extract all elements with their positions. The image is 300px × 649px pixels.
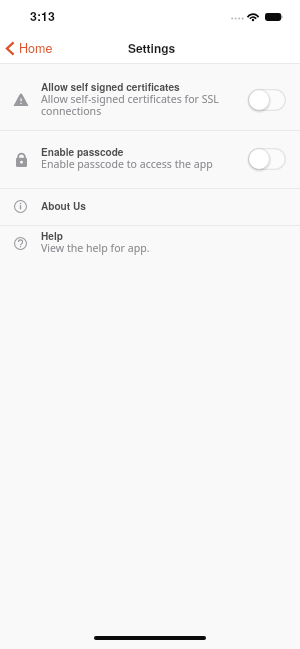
- staticText: About Us: [41, 199, 225, 213]
- button[interactable]: Home: [0, 34, 61, 62]
- staticText: Allow self-signed certificates for SSL: [41, 92, 241, 106]
- staticText: Settings: [128, 39, 176, 56]
- staticText: Home: [19, 39, 53, 57]
- staticText: Enable passcode: [41, 145, 225, 159]
- button[interactable]: Toggle switch: [248, 89, 286, 111]
- staticText: Enable passcode to access the app: [41, 157, 241, 171]
- button[interactable]: [0, 189, 300, 225]
- button[interactable]: [0, 64, 300, 130]
- staticText: View the help for app.: [41, 241, 241, 255]
- staticText: Help: [41, 229, 225, 243]
- staticText: Allow self signed certificates: [41, 80, 225, 94]
- staticText: 3:13: [30, 7, 55, 25]
- button[interactable]: [0, 131, 300, 188]
- button[interactable]: Toggle switch: [248, 148, 286, 170]
- staticText: connections: [41, 104, 241, 118]
- button[interactable]: [0, 226, 300, 259]
